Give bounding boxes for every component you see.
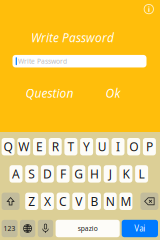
staticText: P [146,139,153,155]
button[interactable]: Vai [122,220,158,237]
staticText: Write Password [18,57,67,66]
staticText: C [59,193,67,209]
button[interactable] [119,165,132,183]
button[interactable] [41,165,54,183]
button[interactable]: Info [142,2,156,16]
staticText: E [36,139,43,155]
button[interactable] [143,138,156,155]
staticText: K [122,166,129,182]
staticText: O [129,139,138,155]
staticText: L [139,166,145,182]
staticText: Question [25,85,73,101]
button[interactable] [88,165,101,183]
staticText: F [60,166,66,182]
staticText: U [98,139,107,155]
staticText: R [52,139,59,155]
staticText: V [75,193,82,209]
button[interactable]: Shift [2,193,20,210]
button[interactable]: Next keyboard [20,220,35,237]
button[interactable] [57,193,70,210]
button[interactable] [64,138,77,155]
button[interactable] [119,193,132,210]
button[interactable]: Delete [140,193,158,210]
button[interactable] [57,165,70,183]
button[interactable] [72,193,85,210]
staticText: M [120,193,131,209]
button[interactable]: Question [25,85,73,101]
button[interactable] [88,193,101,210]
button[interactable] [135,165,148,183]
staticText: A [12,166,20,182]
staticText: Z [28,193,35,209]
staticText: N [106,193,115,209]
button[interactable] [72,165,85,183]
staticText: G [74,166,83,182]
button[interactable] [111,138,124,155]
staticText: 123 [4,224,16,233]
button[interactable] [41,193,54,210]
staticText: spazio [78,224,98,233]
staticText: B [90,193,98,209]
button[interactable] [25,193,38,210]
button[interactable] [127,138,140,155]
button[interactable] [33,138,46,155]
staticText: D [43,166,52,182]
staticText: J [109,166,112,182]
button[interactable]: Numbers [2,220,18,237]
staticText: I [116,139,120,155]
staticText: Y [83,139,90,155]
button[interactable] [80,138,93,155]
button[interactable]: Ok [105,85,120,101]
staticText: W [18,139,29,155]
staticText: Ok [105,85,120,101]
staticText: Q [4,139,13,155]
staticText: X [44,193,51,209]
staticText: H [90,166,99,182]
button[interactable] [56,220,120,237]
staticText: S [28,166,35,182]
button[interactable] [104,193,117,210]
button[interactable] [104,165,117,183]
staticText: Vai [134,223,145,234]
button[interactable] [25,165,38,183]
staticText: T [67,139,74,155]
button[interactable] [49,138,62,155]
button[interactable] [17,138,30,155]
button[interactable] [9,165,22,183]
button[interactable] [96,138,109,155]
button[interactable]: Dictation [38,220,53,237]
button[interactable] [2,138,15,155]
staticText: Write Password [31,30,114,45]
